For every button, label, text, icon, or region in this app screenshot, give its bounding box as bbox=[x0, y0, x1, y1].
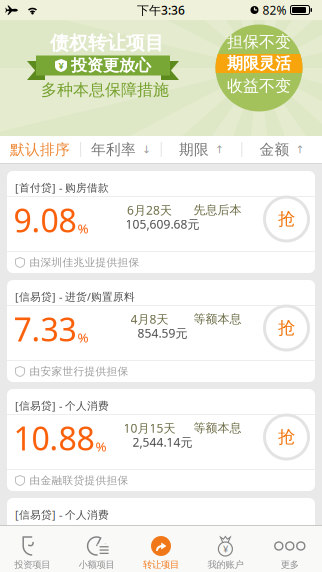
staticText: ¥ bbox=[58, 59, 63, 72]
staticText: % bbox=[77, 328, 88, 346]
staticText: [信易贷] - 进货/购置原料 bbox=[15, 289, 135, 304]
staticText: 投资项目 bbox=[14, 559, 50, 570]
staticText: 我的账户 bbox=[207, 559, 243, 570]
staticText: 抢 bbox=[278, 208, 295, 230]
staticText: 金额 bbox=[260, 140, 290, 158]
staticText: 2,544.14元 bbox=[132, 434, 192, 450]
button[interactable]: 小额项目 bbox=[64, 526, 129, 572]
staticText: 先息后本 bbox=[193, 203, 241, 217]
button[interactable]: 抢 bbox=[264, 306, 308, 350]
staticText: 4月8天 bbox=[130, 311, 168, 327]
staticText: 9.08 bbox=[13, 199, 76, 241]
staticText: ↓ bbox=[142, 143, 151, 155]
staticText: 等额本息 bbox=[193, 421, 241, 435]
button[interactable]: 期限 bbox=[162, 136, 241, 163]
staticText: % bbox=[95, 437, 106, 455]
staticText: 期限 bbox=[179, 140, 209, 158]
button[interactable]: [信易贷] - 个人消费 bbox=[7, 389, 315, 491]
button[interactable]: 投资项目 bbox=[0, 526, 64, 572]
staticText: 854.59元 bbox=[137, 325, 187, 341]
staticText: 转让项目 bbox=[143, 559, 179, 570]
staticText: 6月28天 bbox=[127, 202, 172, 218]
staticText: 担保不变 bbox=[227, 32, 291, 52]
staticText: [信易贷] - 个人消费 bbox=[15, 507, 109, 522]
staticText: 由安家世行提供担保 bbox=[29, 365, 128, 378]
button[interactable]: [信易贷] - 个人消费 bbox=[7, 498, 315, 525]
staticText: 82% bbox=[262, 2, 286, 18]
staticText: 7.33 bbox=[13, 308, 76, 350]
staticText: 投资更放心 bbox=[71, 56, 151, 75]
button[interactable]: 默认排序 bbox=[0, 136, 80, 163]
staticText: 债权转让项目 bbox=[50, 31, 164, 54]
button[interactable]: ¥ bbox=[193, 526, 258, 572]
staticText: 默认排序 bbox=[10, 140, 70, 158]
staticText: % bbox=[77, 219, 88, 237]
staticText: 期限灵活 bbox=[227, 54, 291, 73]
staticText: 下午3:36 bbox=[137, 2, 185, 18]
staticText: 等额本息 bbox=[193, 312, 241, 326]
staticText: [信易贷] - 个人消费 bbox=[15, 398, 109, 413]
staticText: ↑ bbox=[296, 143, 305, 155]
button[interactable]: [信易贷] - 进货/购置原料 bbox=[7, 280, 315, 382]
staticText: 更多 bbox=[281, 559, 299, 570]
staticText: 10月15天 bbox=[123, 420, 175, 436]
staticText: 抢 bbox=[278, 426, 295, 448]
staticText: 多种本息保障措施 bbox=[41, 80, 169, 100]
staticText: 小额项目 bbox=[79, 559, 115, 570]
staticText: 年利率 bbox=[91, 140, 136, 158]
staticText: 10.88 bbox=[13, 417, 94, 459]
button[interactable]: 抢 bbox=[264, 415, 308, 459]
staticText: 收益不变 bbox=[227, 76, 291, 96]
staticText: ¥ bbox=[223, 543, 228, 555]
staticText: 由金融联贷提供担保 bbox=[29, 474, 128, 487]
button[interactable]: 转让项目 bbox=[129, 526, 193, 572]
button[interactable]: [首付贷] - 购房借款 bbox=[7, 171, 315, 273]
button[interactable]: 抢 bbox=[264, 197, 308, 241]
staticText: [首付贷] - 购房借款 bbox=[15, 180, 109, 195]
button[interactable]: 年利率 bbox=[81, 136, 161, 163]
button[interactable]: 金额 bbox=[242, 136, 322, 163]
button[interactable]: 更多 bbox=[258, 526, 322, 572]
staticText: 由深圳佳兆业提供担保 bbox=[29, 256, 139, 269]
staticText: 105,609.68元 bbox=[125, 216, 199, 232]
staticText: 抢 bbox=[278, 317, 295, 339]
staticText: ↑ bbox=[215, 143, 224, 155]
